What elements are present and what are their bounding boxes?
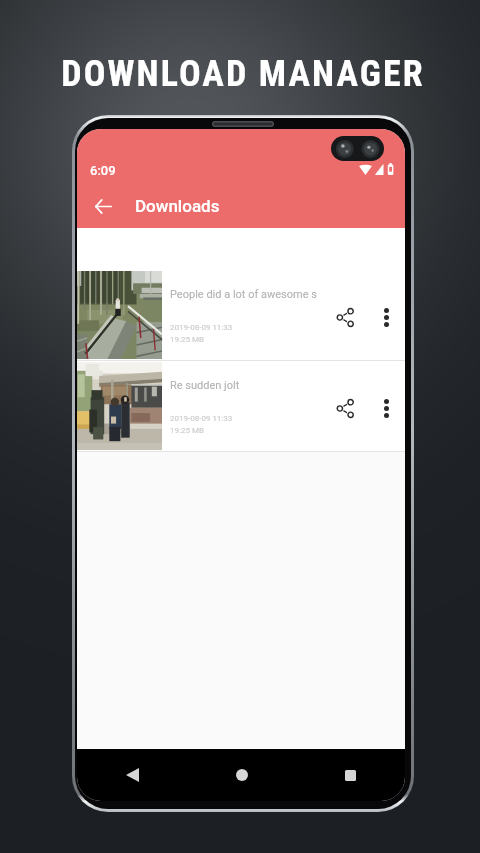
button[interactable]: Navigate up xyxy=(86,189,120,223)
button[interactable]: More options xyxy=(368,299,404,335)
staticText: 2019-08-09 11:33 xyxy=(170,323,233,332)
button[interactable]: People did a lot of awesome s xyxy=(77,270,405,360)
staticText: 19.25 MB xyxy=(170,426,205,435)
button[interactable]: More options xyxy=(368,390,404,426)
button[interactable]: Recent apps xyxy=(296,749,405,801)
staticText: 19.25 MB xyxy=(170,335,205,344)
staticText: 6:09 xyxy=(90,163,116,178)
button[interactable]: Back xyxy=(77,749,187,801)
staticText: People did a lot of awesome s xyxy=(170,288,317,301)
staticText: DOWNLOAD MANAGER xyxy=(61,53,425,95)
staticText: Re sudden jolt xyxy=(170,379,240,392)
staticText: 2019-08-09 11:33 xyxy=(170,414,233,423)
button[interactable]: Home xyxy=(187,749,296,801)
button[interactable]: Share xyxy=(325,297,365,337)
button[interactable]: Share xyxy=(325,388,365,428)
staticText: Downloads xyxy=(135,196,220,216)
button[interactable]: Re sudden jolt xyxy=(77,361,405,451)
